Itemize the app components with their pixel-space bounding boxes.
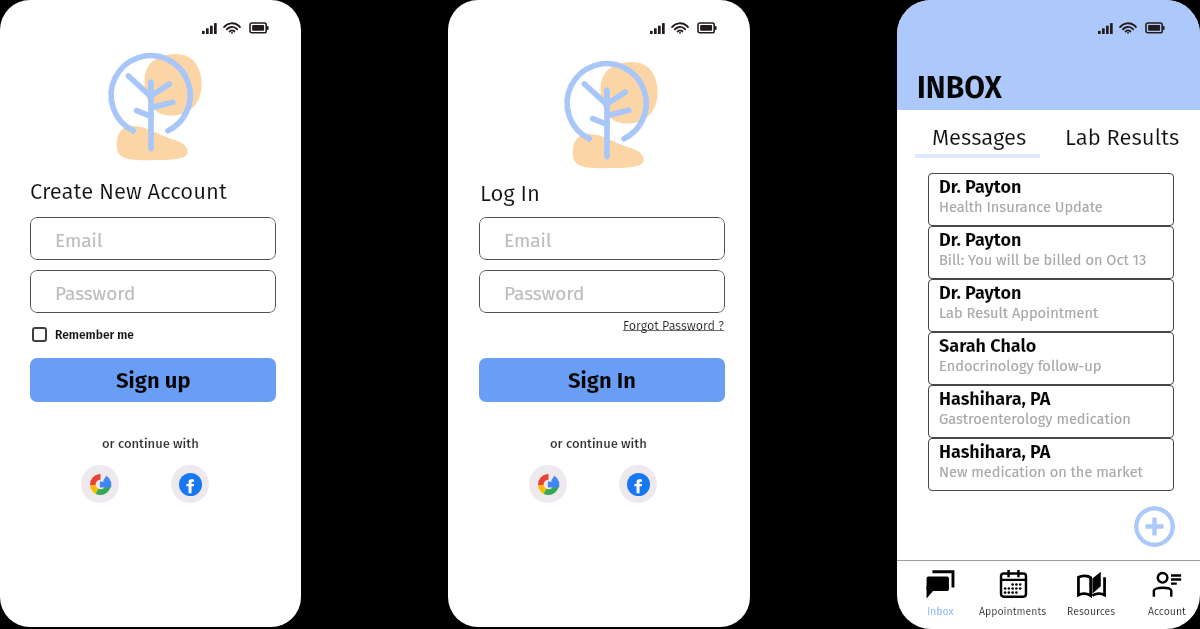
staticText: New medication on the market bbox=[939, 463, 1143, 481]
staticText: Hashihara, PA bbox=[939, 388, 1051, 410]
button[interactable]: Password bbox=[30, 270, 276, 313]
button[interactable]: Sign In bbox=[479, 358, 725, 402]
button[interactable]: Continue with Facebook bbox=[619, 465, 657, 503]
button[interactable]: Email bbox=[479, 217, 725, 260]
button[interactable]: Resources bbox=[1046, 570, 1136, 618]
staticText: Email bbox=[55, 229, 103, 252]
button[interactable]: Continue with Google bbox=[529, 465, 567, 503]
staticText: Sarah Chalo bbox=[939, 335, 1037, 357]
staticText: Sign up bbox=[116, 367, 191, 393]
staticText: Endocrinology follow-up bbox=[939, 357, 1102, 375]
staticText: Create New Account bbox=[30, 178, 227, 204]
staticText: Lab Result Appointment bbox=[939, 304, 1099, 322]
staticText: Health Insurance Update bbox=[939, 198, 1103, 216]
staticText: Bill: You will be billed on Oct 13 bbox=[939, 251, 1147, 269]
button[interactable]: Sarah Chalo bbox=[928, 332, 1174, 385]
staticText: Messages bbox=[932, 124, 1027, 150]
staticText: Hashihara, PA bbox=[939, 441, 1051, 463]
button[interactable]: Inbox bbox=[897, 570, 985, 618]
staticText: Dr. Payton bbox=[939, 282, 1022, 304]
staticText: Sign In bbox=[568, 367, 636, 393]
button[interactable]: Forgot Password ? bbox=[623, 318, 725, 333]
button[interactable]: Compose new message bbox=[1134, 506, 1175, 547]
staticText: Log In bbox=[480, 180, 540, 206]
staticText: Appointments bbox=[979, 605, 1047, 618]
staticText: Dr. Payton bbox=[939, 229, 1022, 251]
button[interactable]: Hashihara, PA bbox=[928, 438, 1174, 491]
button[interactable]: Password bbox=[479, 270, 725, 313]
staticText: Remember me bbox=[55, 328, 134, 342]
button[interactable]: Messages bbox=[915, 121, 1040, 158]
button[interactable]: Dr. Payton bbox=[928, 226, 1174, 279]
staticText: or continue with bbox=[550, 436, 647, 452]
button[interactable]: Continue with Google bbox=[81, 465, 119, 503]
button[interactable]: Remember me bbox=[30, 325, 136, 344]
staticText: Password bbox=[504, 282, 585, 305]
button[interactable]: Sign up bbox=[30, 358, 276, 402]
button[interactable]: Email bbox=[30, 217, 276, 260]
button[interactable]: Dr. Payton bbox=[928, 173, 1174, 226]
button[interactable]: Appointments bbox=[968, 570, 1058, 618]
staticText: Inbox bbox=[927, 605, 954, 618]
button[interactable]: Hashihara, PA bbox=[928, 385, 1174, 438]
button[interactable]: Account bbox=[1122, 570, 1200, 618]
staticText: Account bbox=[1148, 605, 1186, 618]
staticText: Password bbox=[55, 282, 136, 305]
staticText: INBOX bbox=[917, 70, 1002, 106]
staticText: Email bbox=[504, 229, 552, 252]
staticText: Resources bbox=[1067, 605, 1116, 618]
staticText: Gastroenterology medication bbox=[939, 410, 1131, 428]
staticText: Dr. Payton bbox=[939, 176, 1022, 198]
button[interactable]: Continue with Facebook bbox=[171, 465, 209, 503]
button[interactable]: Lab Results bbox=[1065, 124, 1180, 150]
staticText: or continue with bbox=[102, 436, 199, 452]
button[interactable]: Dr. Payton bbox=[928, 279, 1174, 332]
